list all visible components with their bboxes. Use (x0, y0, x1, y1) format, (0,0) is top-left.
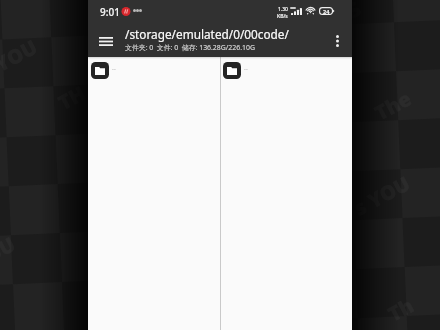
staticText: /storage/emulated/0/00code/ (125, 26, 289, 42)
staticText: KB/s (277, 13, 288, 20)
staticText: 1.30 (278, 6, 288, 13)
button[interactable]: More options (326, 24, 348, 57)
staticText: .. (112, 63, 116, 73)
staticText: 9:01 (100, 5, 120, 19)
staticText: Th (383, 291, 419, 327)
button[interactable]: Menu (95, 29, 117, 53)
staticText: OU (0, 230, 20, 269)
staticText: 24 (323, 8, 330, 15)
button[interactable]: .. (221, 57, 352, 83)
staticText: S (342, 0, 366, 24)
staticText: 文件夹: 0 文件: 0 储存: 136.28G/226.10G (125, 43, 255, 52)
staticText: .. (244, 63, 248, 73)
staticText: YOU (0, 33, 42, 78)
staticText: TH (53, 79, 91, 116)
button[interactable]: .. (88, 57, 220, 83)
staticText: s YOU (349, 169, 415, 221)
staticText: The (370, 85, 416, 126)
